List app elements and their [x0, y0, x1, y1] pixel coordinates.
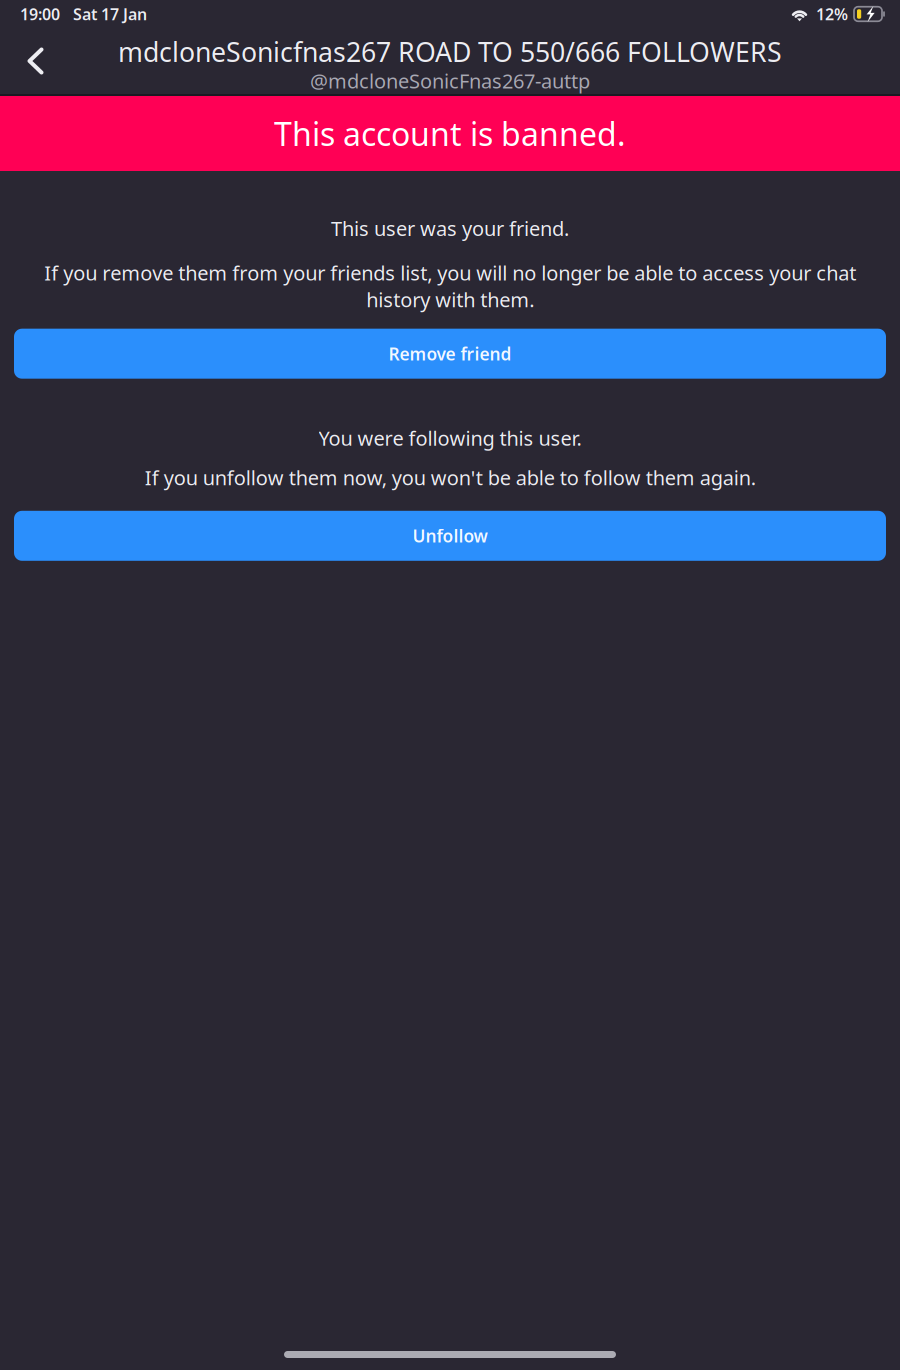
staticText: Sat 17 Jan	[73, 3, 147, 25]
staticText: Unfollow	[412, 524, 487, 547]
button[interactable]: Unfollow	[14, 511, 886, 561]
staticText: You were following this user.	[318, 425, 581, 451]
staticText: This user was your friend.	[331, 215, 569, 242]
staticText: This account is banned.	[274, 112, 626, 155]
staticText: If you unfollow them now, you won't be a…	[144, 464, 755, 491]
staticText: 12%	[816, 3, 848, 25]
button[interactable]: Remove friend	[14, 329, 886, 379]
staticText: 19:00	[20, 3, 60, 25]
staticText: Remove friend	[388, 342, 511, 365]
staticText: mdcloneSonicfnas267 ROAD TO 550/666 FOLL…	[118, 34, 782, 69]
staticText: @mdcloneSonicFnas267-auttp	[310, 67, 590, 94]
button[interactable]: Back	[0, 33, 60, 89]
staticText: If you remove them from your friends lis…	[44, 260, 856, 313]
